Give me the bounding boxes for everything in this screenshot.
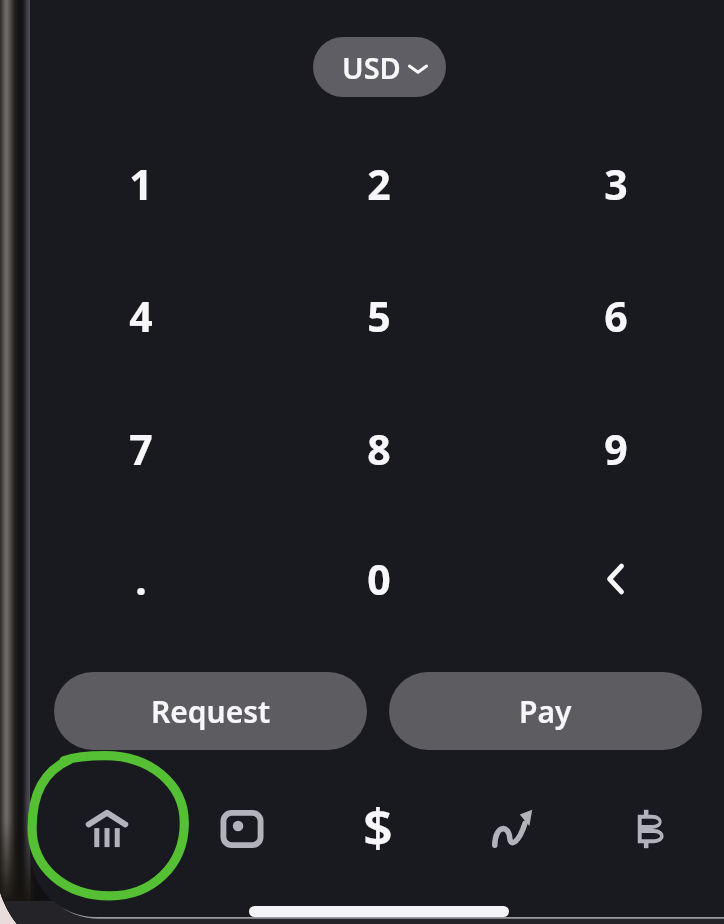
- staticText: 5: [367, 288, 391, 344]
- staticText: 7: [129, 421, 153, 477]
- staticText: 2: [367, 156, 391, 212]
- button[interactable]: Bitcoin: [582, 789, 718, 869]
- button[interactable]: Pay: [389, 672, 702, 750]
- button[interactable]: $: [310, 789, 446, 869]
- staticText: Pay: [519, 691, 572, 732]
- button[interactable]: Card: [174, 789, 310, 869]
- staticText: USD: [342, 48, 401, 87]
- button[interactable]: Request: [54, 672, 367, 750]
- staticText: 9: [604, 421, 628, 477]
- button[interactable]: 1: [77, 130, 205, 238]
- button[interactable]: Investing: [446, 789, 582, 869]
- button[interactable]: 9: [552, 395, 680, 503]
- button[interactable]: Delete: [552, 525, 680, 633]
- button[interactable]: 7: [77, 395, 205, 503]
- staticText: 1: [129, 156, 153, 212]
- staticText: 3: [604, 156, 628, 212]
- staticText: .: [135, 551, 147, 607]
- button[interactable]: 8: [315, 395, 443, 503]
- button[interactable]: 5: [315, 262, 443, 370]
- button[interactable]: 6: [552, 262, 680, 370]
- other: Delete: [593, 556, 639, 602]
- button[interactable]: .: [77, 525, 205, 633]
- button[interactable]: 3: [552, 130, 680, 238]
- button[interactable]: USD: [313, 37, 446, 97]
- button[interactable]: Banking: [39, 789, 174, 869]
- staticText: 8: [367, 421, 391, 477]
- staticText: Request: [151, 691, 271, 732]
- staticText: $: [363, 791, 393, 862]
- button[interactable]: 4: [77, 262, 205, 370]
- staticText: 4: [129, 288, 153, 344]
- staticText: 0: [367, 551, 391, 607]
- button[interactable]: 2: [315, 130, 443, 238]
- button[interactable]: 0: [315, 525, 443, 633]
- staticText: 6: [604, 288, 628, 344]
